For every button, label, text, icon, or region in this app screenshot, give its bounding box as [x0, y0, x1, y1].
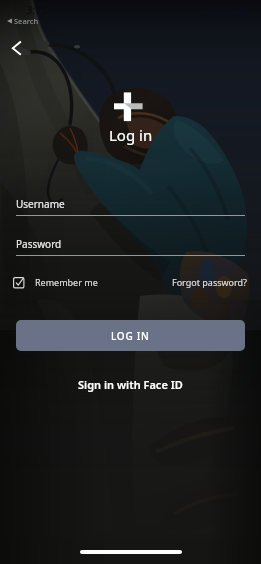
staticText: Username	[16, 197, 65, 211]
button[interactable]: LOG IN	[16, 320, 245, 351]
staticText: Remember me	[35, 276, 98, 288]
staticText: Sign in with Face ID	[78, 377, 183, 392]
staticText: 3:15	[26, 2, 48, 17]
button[interactable]: Forgot password?	[172, 274, 248, 290]
staticText: Log in	[109, 125, 153, 145]
staticText: LOG IN	[111, 329, 150, 343]
button[interactable]: Remember me	[13, 274, 98, 290]
staticText: Forgot password?	[172, 276, 248, 288]
button[interactable]: Sign in with Face ID	[68, 374, 193, 395]
staticText: Search	[14, 16, 39, 26]
button[interactable]: Back	[5, 35, 31, 61]
staticText: Password	[16, 237, 62, 251]
